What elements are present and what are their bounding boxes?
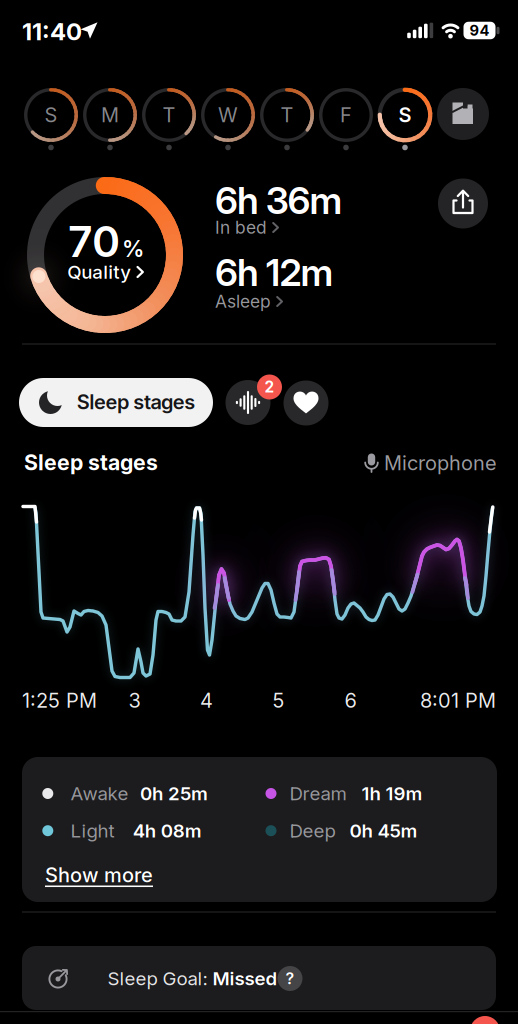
staticText: 3 xyxy=(128,688,140,713)
staticText: 6h 36m xyxy=(215,178,342,223)
staticText: Sleep stages xyxy=(24,450,158,475)
staticText: Sleep stages xyxy=(77,390,195,414)
staticText: 2 xyxy=(264,378,274,396)
staticText: % xyxy=(122,235,144,262)
button[interactable]: Asleep xyxy=(215,291,305,312)
staticText: Microphone xyxy=(384,451,497,475)
staticText: 1h 19m xyxy=(362,782,423,805)
staticText: Light xyxy=(70,819,114,842)
staticText: Awake xyxy=(70,782,128,805)
staticText: Deep xyxy=(290,819,336,842)
button[interactable]: T xyxy=(259,87,315,143)
staticText: Sleep Goal: xyxy=(107,967,212,990)
staticText: 11:40 xyxy=(22,17,82,46)
button[interactable]: W xyxy=(200,87,256,143)
button[interactable] xyxy=(437,88,489,140)
staticText: W xyxy=(218,103,238,127)
button[interactable] xyxy=(470,1016,500,1024)
staticText: 0h 25m xyxy=(140,782,208,805)
button[interactable] xyxy=(283,380,328,425)
staticText: In bed xyxy=(215,217,267,238)
staticText: ? xyxy=(285,969,294,988)
staticText: 0h 45m xyxy=(350,819,418,842)
staticText: Asleep xyxy=(215,291,271,312)
staticText: 6h 12m xyxy=(215,250,333,295)
staticText: Quality xyxy=(67,261,131,283)
button[interactable]: T xyxy=(141,87,197,143)
staticText: T xyxy=(162,103,175,127)
button[interactable]: In bed xyxy=(215,217,305,238)
button[interactable]: F xyxy=(318,87,374,143)
staticText: S xyxy=(44,103,57,127)
staticText: 8:01 PM xyxy=(420,688,496,713)
button[interactable]: M xyxy=(82,87,138,143)
staticText: T xyxy=(280,103,293,127)
button[interactable]: Microphone xyxy=(327,451,497,475)
staticText: 4h 08m xyxy=(133,819,202,842)
button[interactable] xyxy=(438,178,488,228)
staticText: 94 xyxy=(469,22,489,39)
button[interactable]: Sleep stages xyxy=(19,378,213,427)
button[interactable]: S xyxy=(23,87,79,143)
staticText: Missed xyxy=(212,967,277,990)
staticText: 6 xyxy=(344,688,356,713)
staticText: 5 xyxy=(272,688,284,713)
button[interactable]: S xyxy=(377,87,433,143)
staticText: 1:25 PM xyxy=(22,688,97,713)
staticText: Dream xyxy=(290,782,347,805)
staticText: M xyxy=(101,103,119,127)
button[interactable]: Sleep Goal: xyxy=(22,946,496,1010)
button[interactable]: 2 xyxy=(225,371,283,434)
button[interactable]: Show more xyxy=(45,863,175,887)
staticText: F xyxy=(340,103,352,127)
staticText: S xyxy=(398,103,411,127)
staticText: 70 xyxy=(68,216,120,267)
staticText: 4 xyxy=(200,688,213,713)
staticText: Show more xyxy=(45,863,153,887)
button[interactable]: Quality xyxy=(67,261,145,283)
